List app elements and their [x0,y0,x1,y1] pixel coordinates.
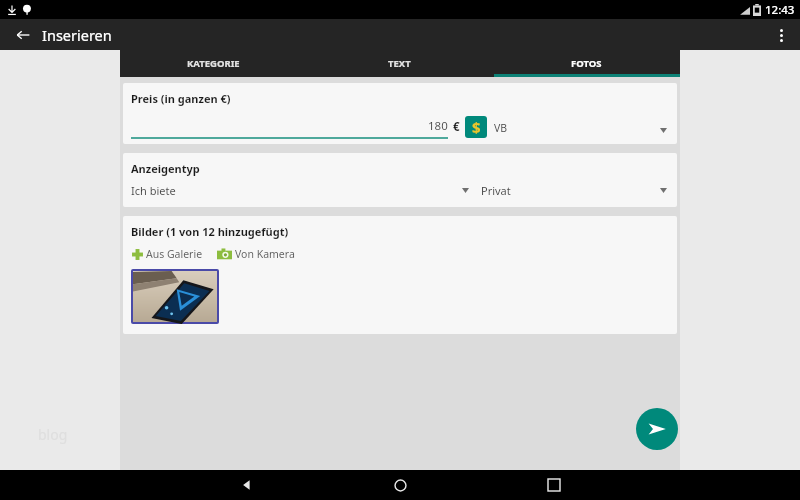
button[interactable]: VB [494,121,669,139]
staticText: Von Kamera [235,247,295,261]
button[interactable]: 180 [131,118,448,139]
staticText: blog [38,425,68,444]
staticText: Privat [481,183,511,198]
staticText: VB [494,121,508,135]
button[interactable]: Home [384,470,416,500]
staticText: KATEGORIE [187,57,240,70]
button[interactable]: Privat [481,183,669,198]
button[interactable]: Back [8,20,38,50]
button[interactable]: Von Kamera [217,247,295,261]
staticText: 180 [428,118,448,134]
button[interactable]: Ich biete [131,183,473,198]
button[interactable]: Photo thumbnail [133,271,217,322]
staticText: Ich biete [131,183,176,198]
button[interactable]: Send [636,408,678,450]
button[interactable]: More options [766,20,796,50]
staticText: Bilder (1 von 12 hinzugefügt) [131,224,289,239]
staticText: $ [472,117,481,137]
button[interactable]: KATEGORIE [120,50,306,77]
staticText: Inserieren [42,25,112,45]
staticText: Preis (in ganzen €) [131,91,231,106]
button[interactable]: Aus Galerie [131,247,203,261]
staticText: Anzeigentyp [131,161,200,176]
button[interactable]: Price type [465,116,487,138]
staticText: € [453,119,460,135]
staticText: Aus Galerie [146,247,203,261]
button[interactable]: TEXT [306,50,493,77]
staticText: TEXT [388,57,411,70]
staticText: 12:43 [765,2,795,18]
button[interactable]: FOTOS [493,50,680,77]
button[interactable]: Back [230,470,262,500]
staticText: FOTOS [571,57,602,70]
button[interactable]: Recent apps [538,470,570,500]
